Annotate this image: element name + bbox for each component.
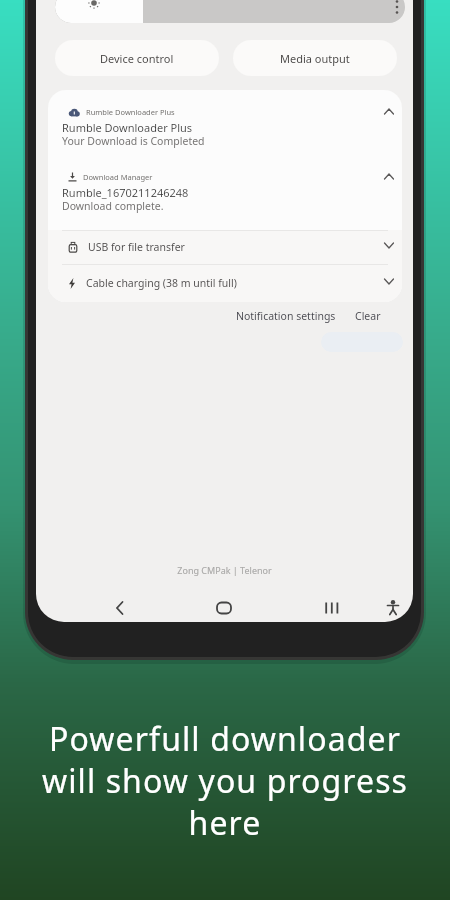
button[interactable]: USB for file transfer xyxy=(48,230,402,264)
button[interactable] xyxy=(322,598,342,618)
button[interactable] xyxy=(384,278,394,285)
button[interactable] xyxy=(55,0,405,23)
button[interactable] xyxy=(214,598,234,618)
staticText: Download Manager xyxy=(83,172,153,182)
staticText: Powerfull downloader will show you progr… xyxy=(0,717,450,844)
button[interactable] xyxy=(384,108,394,115)
button[interactable]: Notification settings xyxy=(236,309,336,323)
button[interactable] xyxy=(110,598,130,618)
button[interactable]: Clear xyxy=(355,309,381,323)
staticText: Rumble Downloader Plus xyxy=(86,107,175,117)
button[interactable]: Device control xyxy=(55,40,219,76)
staticText: Cable charging (38 m until full) xyxy=(86,276,237,290)
button[interactable]: Cable charging (38 m until full) xyxy=(48,264,402,302)
button[interactable]: Media output xyxy=(233,40,397,76)
staticText: Rumble Downloader Plus xyxy=(62,120,193,135)
staticText: USB for file transfer xyxy=(88,240,185,254)
staticText: Media output xyxy=(280,51,350,66)
staticText: Rumble_1670211246248 xyxy=(62,185,189,200)
button[interactable] xyxy=(384,173,394,180)
button[interactable] xyxy=(383,598,403,618)
staticText: Download complete. xyxy=(62,199,164,213)
button[interactable] xyxy=(48,90,402,160)
staticText: Your Download is Completed xyxy=(62,134,205,148)
staticText: Device control xyxy=(100,51,174,66)
button[interactable] xyxy=(48,160,402,230)
button[interactable] xyxy=(384,242,394,249)
staticText: Zong CMPak | Telenor xyxy=(36,564,413,576)
